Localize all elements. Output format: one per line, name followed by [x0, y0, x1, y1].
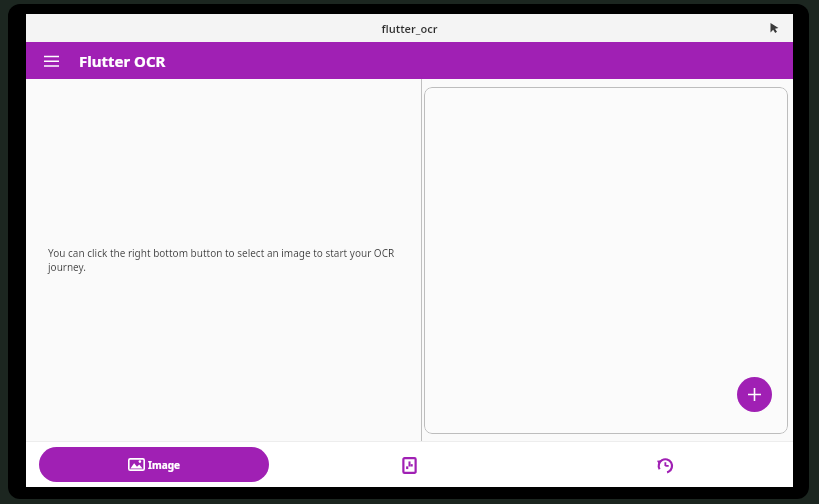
button[interactable]: Open navigation menu: [34, 44, 68, 78]
staticText: flutter_ocr: [381, 21, 438, 36]
button[interactable]: Select an image: [737, 377, 772, 412]
staticText: You can click the right bottom button to…: [48, 246, 413, 274]
button[interactable]: PDF: [390, 446, 428, 484]
staticText: Image: [148, 458, 180, 472]
button[interactable]: Image: [39, 447, 269, 482]
button[interactable]: History: [646, 446, 684, 484]
staticText: Flutter OCR: [79, 51, 166, 71]
